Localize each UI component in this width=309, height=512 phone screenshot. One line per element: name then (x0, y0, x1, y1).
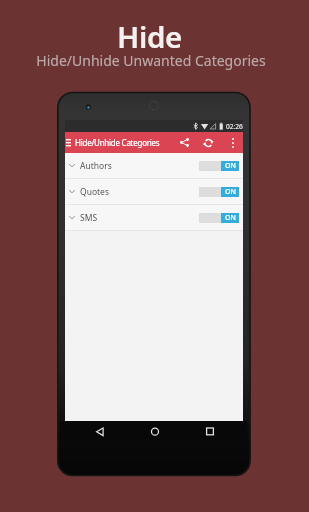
button[interactable]: Home (143, 421, 167, 443)
staticText: Authors (80, 160, 112, 172)
button[interactable]: Recent apps (198, 421, 222, 443)
staticText: 02:26 (226, 122, 243, 131)
button[interactable]: Quotes (65, 179, 243, 205)
button[interactable]: Authors (65, 153, 243, 179)
button[interactable]: Refresh (198, 132, 219, 153)
staticText: ON (225, 187, 236, 197)
staticText: ON (225, 161, 236, 171)
button[interactable]: Share (174, 132, 195, 153)
staticText: SMS (80, 212, 98, 224)
button[interactable]: Toggle on (199, 161, 239, 171)
staticText: Hide (117, 16, 182, 56)
button[interactable]: Back (88, 421, 112, 443)
button[interactable]: Toggle on (199, 187, 239, 197)
staticText: Hide/Unhide Unwanted Categories (36, 51, 266, 70)
button[interactable]: Toggle on (199, 213, 239, 223)
staticText: Hide/Unhide Categories (75, 137, 160, 148)
button[interactable]: More options (224, 132, 241, 153)
staticText: ON (225, 213, 236, 223)
button[interactable]: Open navigation drawer (62, 132, 74, 153)
staticText: Quotes (80, 186, 109, 198)
button[interactable]: SMS (65, 205, 243, 231)
